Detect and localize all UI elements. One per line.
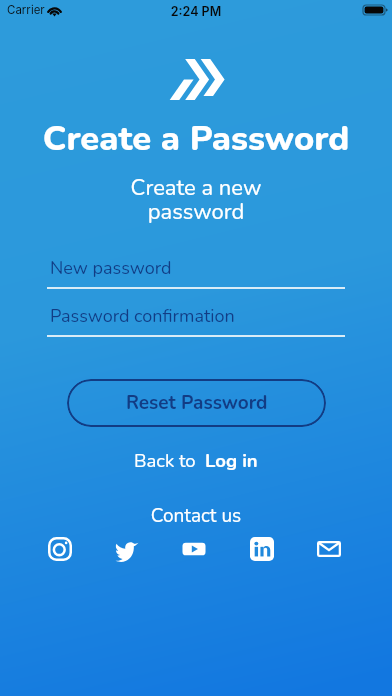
button[interactable]: Reset Password (67, 379, 326, 427)
button[interactable]: Log in (205, 448, 258, 473)
staticText: New password (50, 256, 172, 281)
staticText: Back to (134, 448, 196, 473)
button[interactable]: Instagram (48, 537, 72, 561)
staticText: Create a new password (0, 173, 392, 227)
staticText: Contact us (0, 503, 392, 529)
button[interactable]: Twitter (115, 537, 139, 561)
button[interactable]: LinkedIn (250, 537, 274, 561)
staticText: Carrier (7, 3, 45, 17)
staticText: 2:24 PM (0, 4, 392, 19)
staticText: Log in (205, 448, 258, 473)
staticText: Password confirmation (50, 304, 235, 329)
staticText: Reset Password (126, 390, 268, 416)
button[interactable]: Email (317, 537, 341, 561)
staticText: Create a Password (0, 115, 392, 162)
button[interactable]: YouTube (182, 537, 206, 561)
